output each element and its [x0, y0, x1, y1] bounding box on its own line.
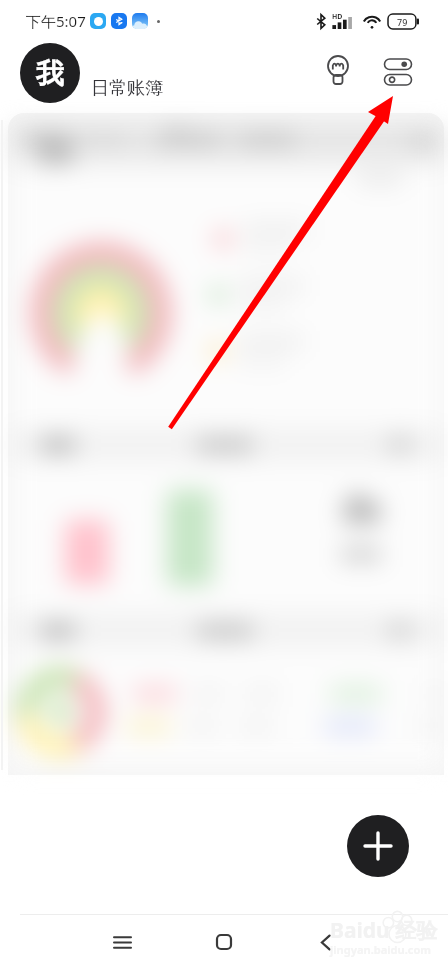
button[interactable]: Add record [347, 815, 409, 877]
staticText: jingyan.baidu.com [330, 942, 432, 957]
staticText: HD [332, 12, 343, 22]
button[interactable]: Tips [316, 48, 360, 92]
staticText: 下午5:07 [26, 11, 86, 31]
button[interactable]: 我 [20, 43, 80, 103]
staticText: Baidu 经验 [330, 916, 438, 945]
staticText: 日常账簿 [91, 77, 163, 100]
staticText: 79 [397, 16, 408, 28]
button[interactable]: Recent apps [97, 917, 147, 967]
button[interactable]: Settings [376, 50, 420, 94]
button[interactable]: Home [199, 917, 249, 967]
button[interactable]: Back [300, 917, 350, 967]
staticText: 我 [36, 56, 64, 91]
